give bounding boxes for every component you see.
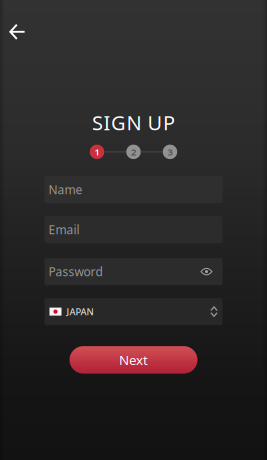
staticText: JAPAN <box>66 305 93 318</box>
staticText: SIGN UP <box>92 109 175 136</box>
staticText: 2 <box>131 146 136 158</box>
staticText: Next <box>119 351 148 369</box>
button[interactable]: Email <box>44 216 222 243</box>
staticText: Password <box>48 264 102 279</box>
button[interactable]: JAPAN <box>44 298 222 325</box>
button[interactable]: Name <box>44 176 222 203</box>
button[interactable]: Next <box>69 346 197 374</box>
staticText: Email <box>48 222 79 237</box>
button[interactable]: Password <box>44 258 222 285</box>
staticText: Name <box>48 182 82 197</box>
button[interactable]: Back <box>0 0 35 50</box>
staticText: 1 <box>94 146 99 158</box>
staticText: 3 <box>167 146 172 158</box>
